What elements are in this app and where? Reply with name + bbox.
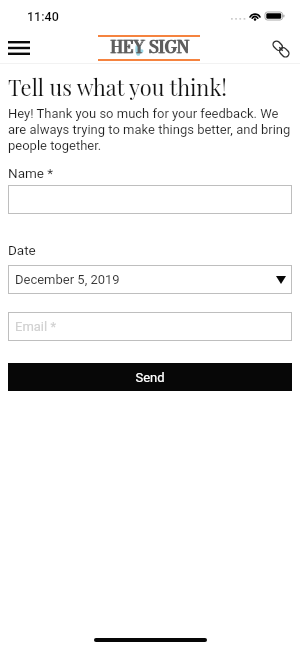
staticText: Hey! Thank you so much for your feedback… [8,106,293,153]
staticText: Send [135,370,165,385]
staticText: Email * [15,319,57,334]
staticText: Tell us what you think! [8,72,228,101]
button[interactable]: HEY SIGN [98,35,200,61]
staticText: HEY SIGN [110,35,189,60]
button[interactable]: Open navigation menu [1,34,37,62]
button[interactable]: Date: December 5, 2019 [8,265,292,294]
staticText: 11:40 [27,9,59,24]
button[interactable]: Send [8,363,292,391]
staticText: HEY SIGN [111,35,190,60]
button[interactable]: Email * [8,312,292,341]
staticText: Date [8,242,36,258]
staticText: Name * [8,165,54,181]
button[interactable] [8,185,292,214]
staticText: December 5, 2019 [15,272,120,287]
button[interactable]: Copy link [267,35,295,63]
